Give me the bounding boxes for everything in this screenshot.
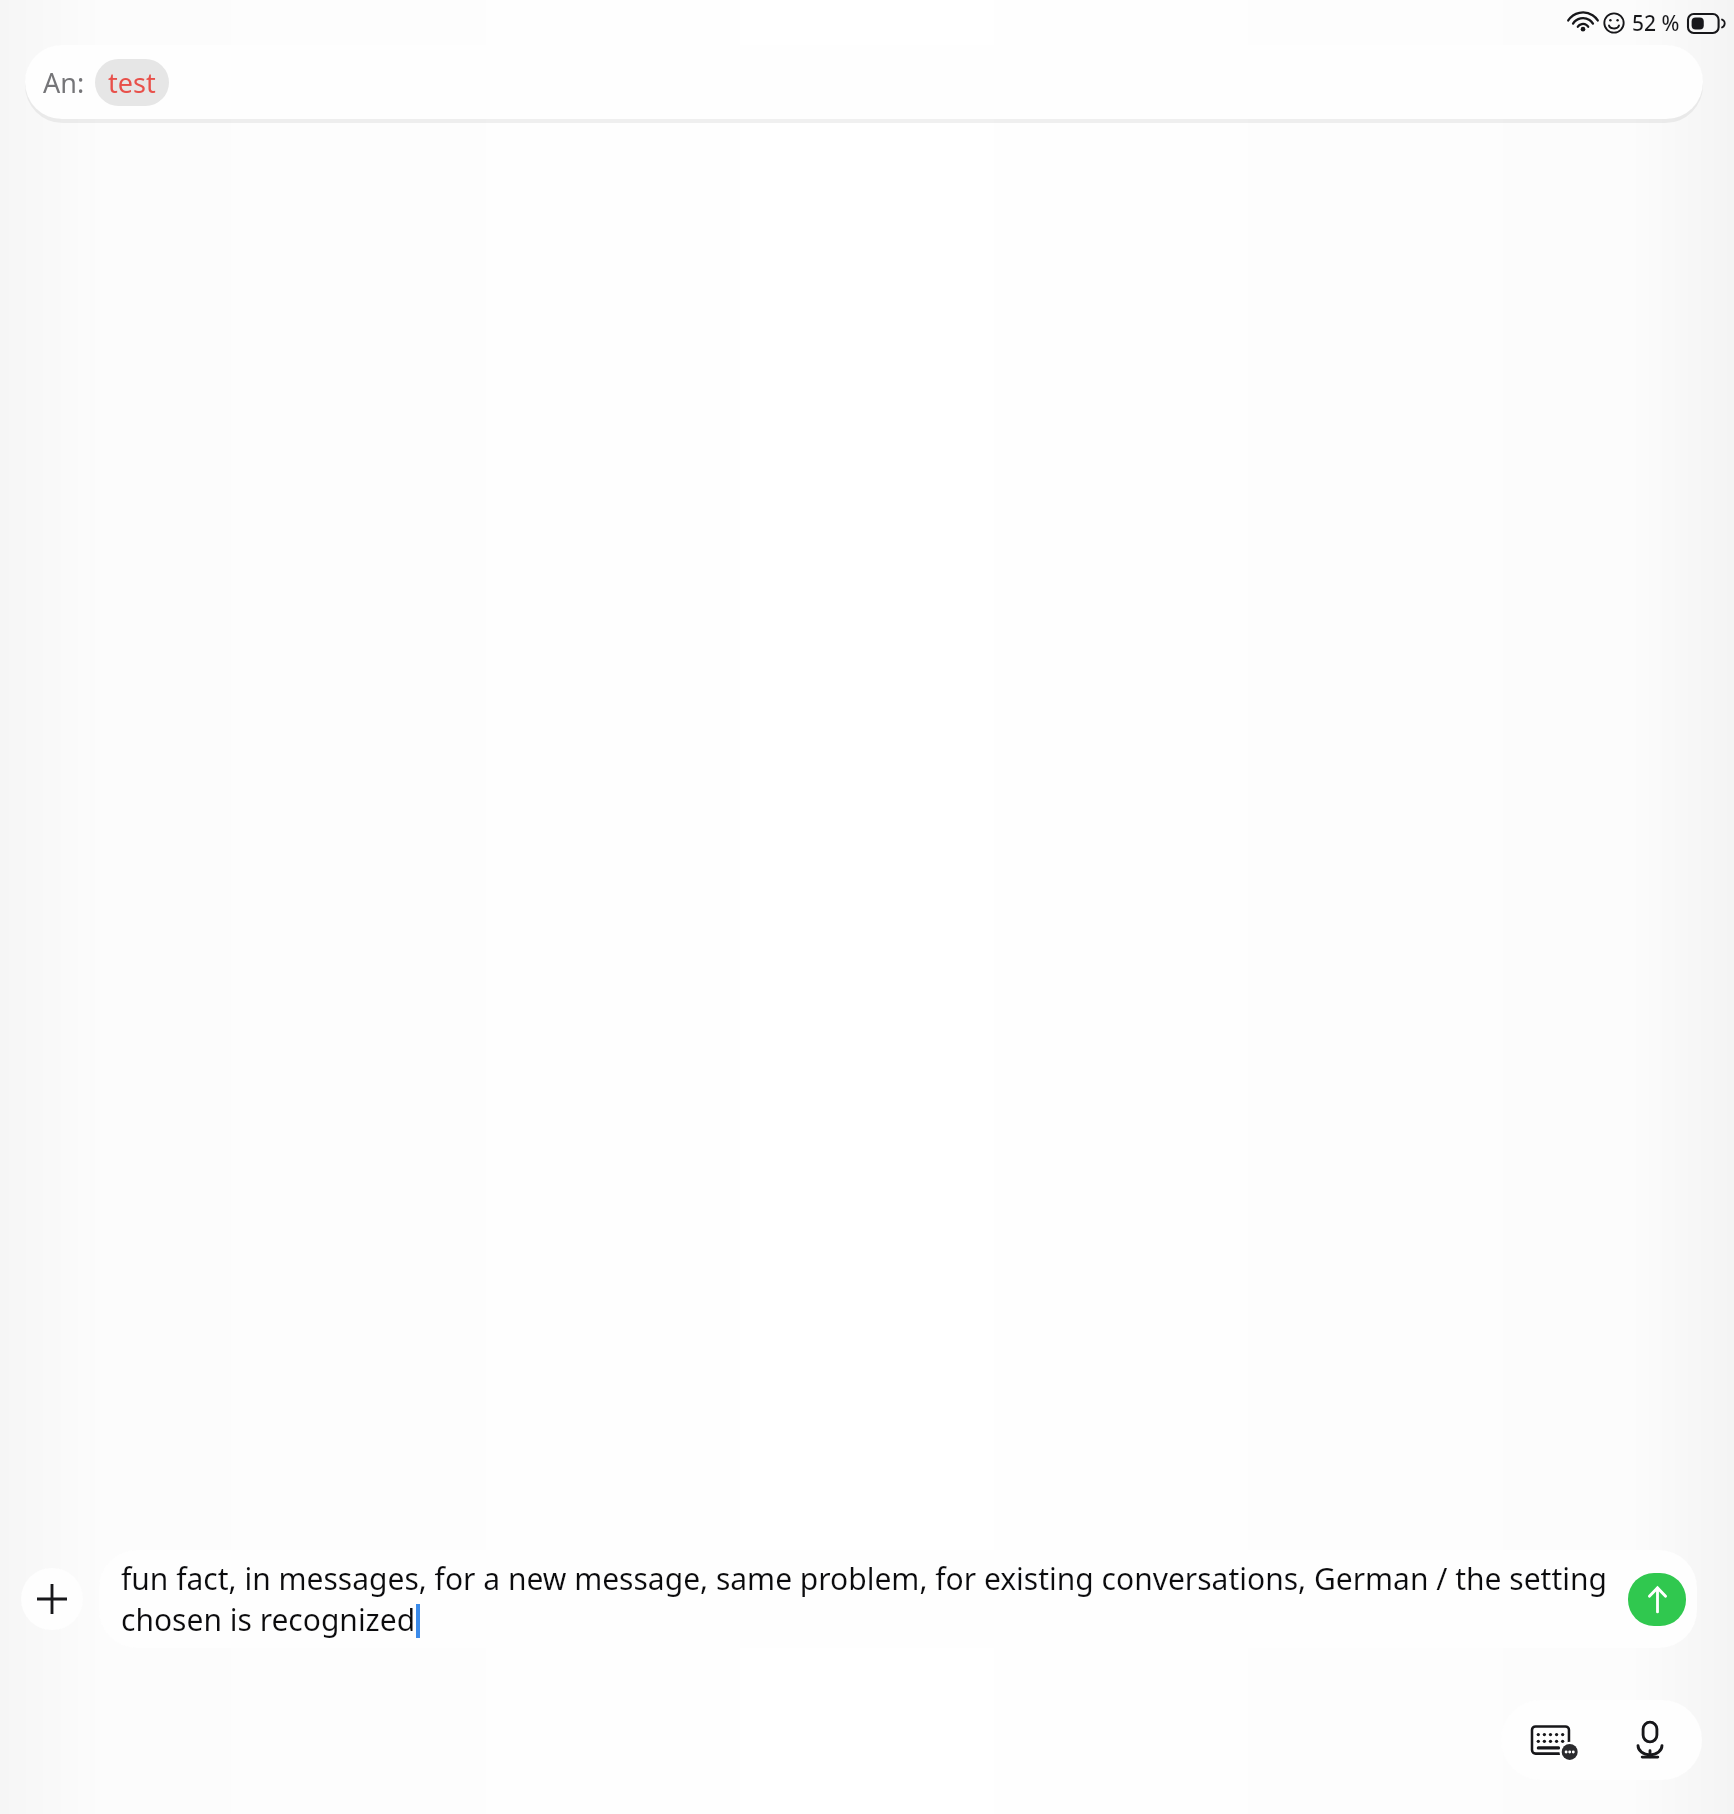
button[interactable]: Voice input — [1602, 1700, 1698, 1780]
button[interactable]: Send — [1628, 1573, 1686, 1626]
button[interactable]: test — [95, 59, 169, 106]
button[interactable]: Change keyboard — [1506, 1700, 1602, 1780]
staticText: fun fact, in messages, for a new message… — [121, 1558, 1607, 1599]
button[interactable]: An: — [25, 45, 1703, 119]
button[interactable]: Add attachment — [21, 1568, 83, 1630]
staticText: 52 % — [1632, 9, 1680, 38]
staticText: test — [108, 64, 156, 101]
button[interactable]: fun fact, in messages, for a new message… — [99, 1550, 1697, 1648]
staticText: chosen is recognized — [121, 1599, 416, 1640]
staticText: An: — [43, 64, 85, 101]
